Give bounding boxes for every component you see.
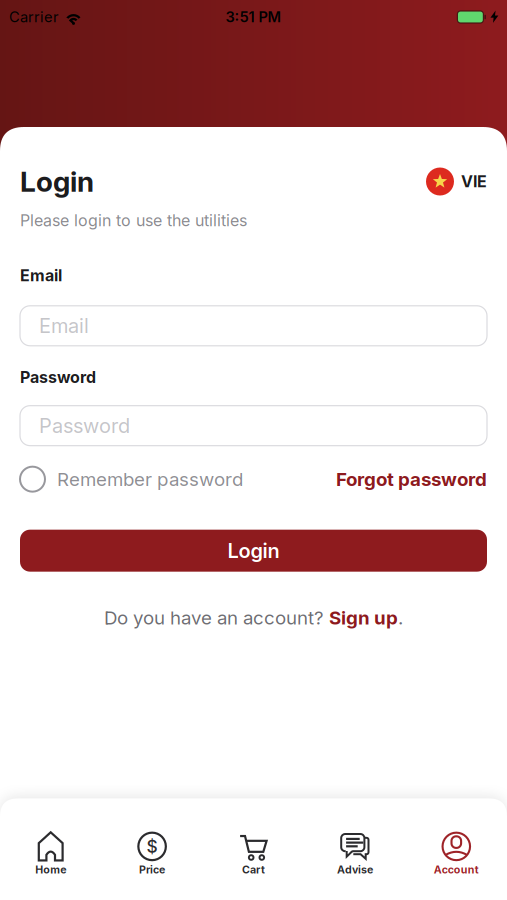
staticText: Login [20, 165, 94, 198]
staticText: Email [39, 314, 89, 338]
staticText: Please login to use the utilities [20, 211, 247, 230]
button[interactable]: Account [406, 831, 507, 876]
button[interactable]: Password [20, 406, 487, 446]
staticText: Carrier [9, 8, 59, 26]
button[interactable]: Advise [304, 831, 406, 876]
staticText: Account [434, 863, 479, 876]
staticText: Sign up [329, 607, 398, 629]
button[interactable]: Forgot password [336, 468, 487, 490]
staticText: 3:51 PM [225, 8, 281, 26]
button[interactable]: Sign up [329, 607, 398, 629]
button[interactable]: Remember password [20, 467, 243, 492]
staticText: VIE [461, 172, 487, 191]
staticText: Price [139, 863, 165, 876]
button[interactable]: Login [20, 530, 487, 572]
staticText: Do you have an account? [104, 607, 329, 629]
button[interactable]: Language: Vietnamese [426, 167, 487, 195]
staticText: $ [147, 836, 158, 857]
button[interactable]: Email [20, 306, 487, 346]
staticText: Email [20, 266, 62, 285]
staticText: Password [39, 414, 130, 437]
staticText: Remember password [57, 468, 243, 490]
staticText: Home [35, 863, 66, 876]
staticText: Cart [242, 863, 265, 876]
staticText: Advise [337, 863, 373, 876]
staticText: Login [227, 539, 279, 562]
staticText: Forgot password [336, 468, 487, 490]
staticText: Password [20, 368, 96, 387]
button[interactable]: Cart [203, 831, 304, 876]
button[interactable]: Home [0, 831, 101, 876]
staticText: . [398, 607, 403, 629]
button[interactable]: $ [101, 831, 203, 876]
